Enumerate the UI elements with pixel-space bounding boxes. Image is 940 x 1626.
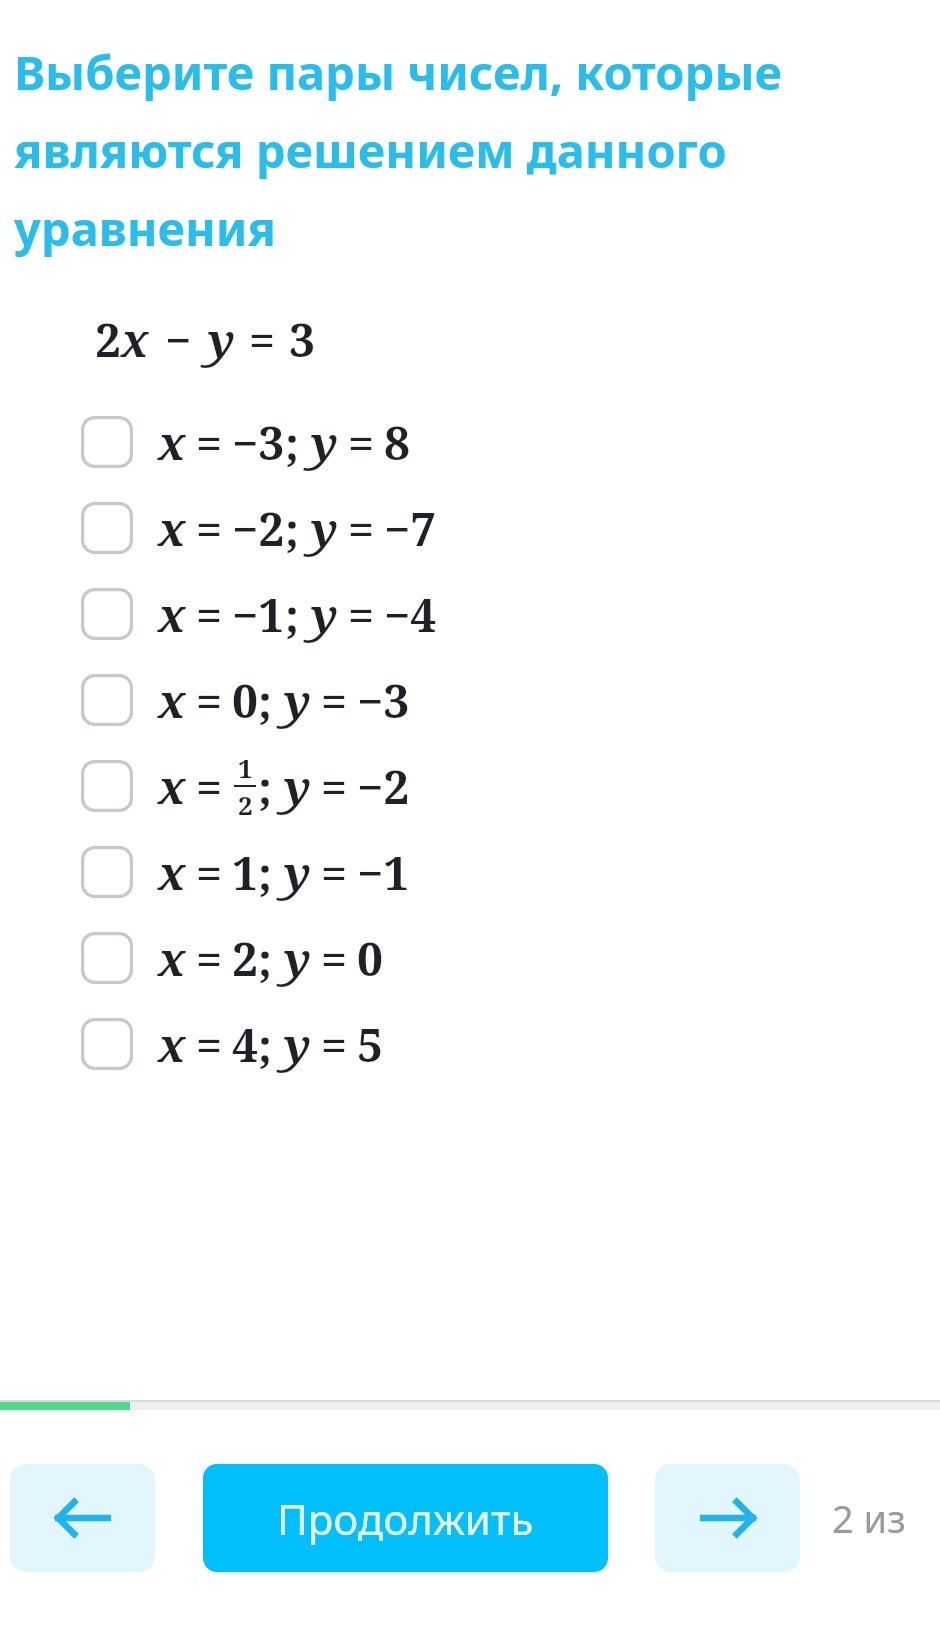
staticText: =	[196, 669, 222, 732]
staticText: x	[158, 583, 186, 646]
staticText: =	[196, 927, 222, 990]
staticText: −1	[232, 583, 285, 646]
button[interactable]: x	[0, 915, 940, 1001]
button[interactable]: Вперёд	[655, 1464, 800, 1572]
staticText: =	[321, 927, 347, 990]
staticText: ;	[258, 841, 272, 904]
staticText: =	[321, 1013, 347, 1076]
staticText: x	[158, 1013, 186, 1076]
staticText: ;	[285, 411, 299, 474]
staticText: ;	[258, 755, 272, 818]
staticText: y	[284, 927, 311, 990]
staticText: −2	[357, 755, 410, 818]
button[interactable]: x	[0, 571, 940, 657]
staticText: y	[311, 497, 338, 560]
staticText: x	[158, 927, 186, 990]
staticText: x	[158, 411, 186, 474]
staticText: 2	[238, 787, 253, 822]
button[interactable]: x	[0, 1001, 940, 1087]
button[interactable]: Продолжить	[203, 1464, 608, 1572]
staticText: −1	[357, 841, 410, 904]
staticText: x	[158, 497, 186, 560]
staticText: =	[348, 411, 374, 474]
staticText: y	[284, 1013, 311, 1076]
staticText: =	[348, 497, 374, 560]
staticText: x	[158, 755, 186, 818]
button[interactable]: x	[0, 657, 940, 743]
staticText: =	[321, 755, 347, 818]
staticText: Выберите пары чисел, которые являются ре…	[14, 40, 880, 260]
staticText: =	[348, 583, 374, 646]
button[interactable]: x	[0, 485, 940, 571]
staticText: y	[284, 669, 311, 732]
staticText: =	[196, 1013, 222, 1076]
staticText: =	[196, 755, 222, 818]
staticText: 3	[289, 308, 315, 371]
staticText: y	[284, 755, 311, 818]
staticText: 2	[95, 308, 121, 371]
staticText: −4	[384, 583, 437, 646]
staticText: 2 из	[832, 1492, 906, 1544]
button[interactable]: x	[0, 399, 940, 485]
staticText: x	[121, 308, 149, 371]
staticText: =	[196, 411, 222, 474]
staticText: =	[321, 841, 347, 904]
staticText: ;	[258, 927, 272, 990]
staticText: 0	[232, 669, 258, 732]
button[interactable]: Назад	[10, 1464, 155, 1572]
staticText: Продолжить	[277, 1490, 534, 1547]
staticText: 4	[232, 1013, 258, 1076]
staticText: 2	[232, 927, 258, 990]
staticText: 5	[357, 1013, 383, 1076]
staticText: −3	[232, 411, 285, 474]
staticText: ;	[285, 497, 299, 560]
staticText: 1	[232, 841, 258, 904]
staticText: −	[165, 308, 192, 371]
staticText: ;	[258, 1013, 272, 1076]
button[interactable]: x	[0, 743, 940, 829]
staticText: −7	[384, 497, 437, 560]
staticText: x	[158, 669, 186, 732]
staticText: 0	[357, 927, 383, 990]
staticText: =	[196, 583, 222, 646]
staticText: ;	[285, 583, 299, 646]
staticText: x	[158, 841, 186, 904]
staticText: ;	[258, 669, 272, 732]
staticText: −2	[232, 497, 285, 560]
button[interactable]: x	[0, 829, 940, 915]
staticText: y	[311, 583, 338, 646]
staticText: y	[208, 308, 235, 371]
staticText: =	[249, 308, 275, 371]
staticText: 1	[238, 750, 253, 785]
staticText: y	[284, 841, 311, 904]
staticText: =	[196, 497, 222, 560]
staticText: =	[321, 669, 347, 732]
staticText: =	[196, 841, 222, 904]
staticText: −3	[357, 669, 410, 732]
staticText: y	[311, 411, 338, 474]
staticText: 8	[384, 411, 410, 474]
